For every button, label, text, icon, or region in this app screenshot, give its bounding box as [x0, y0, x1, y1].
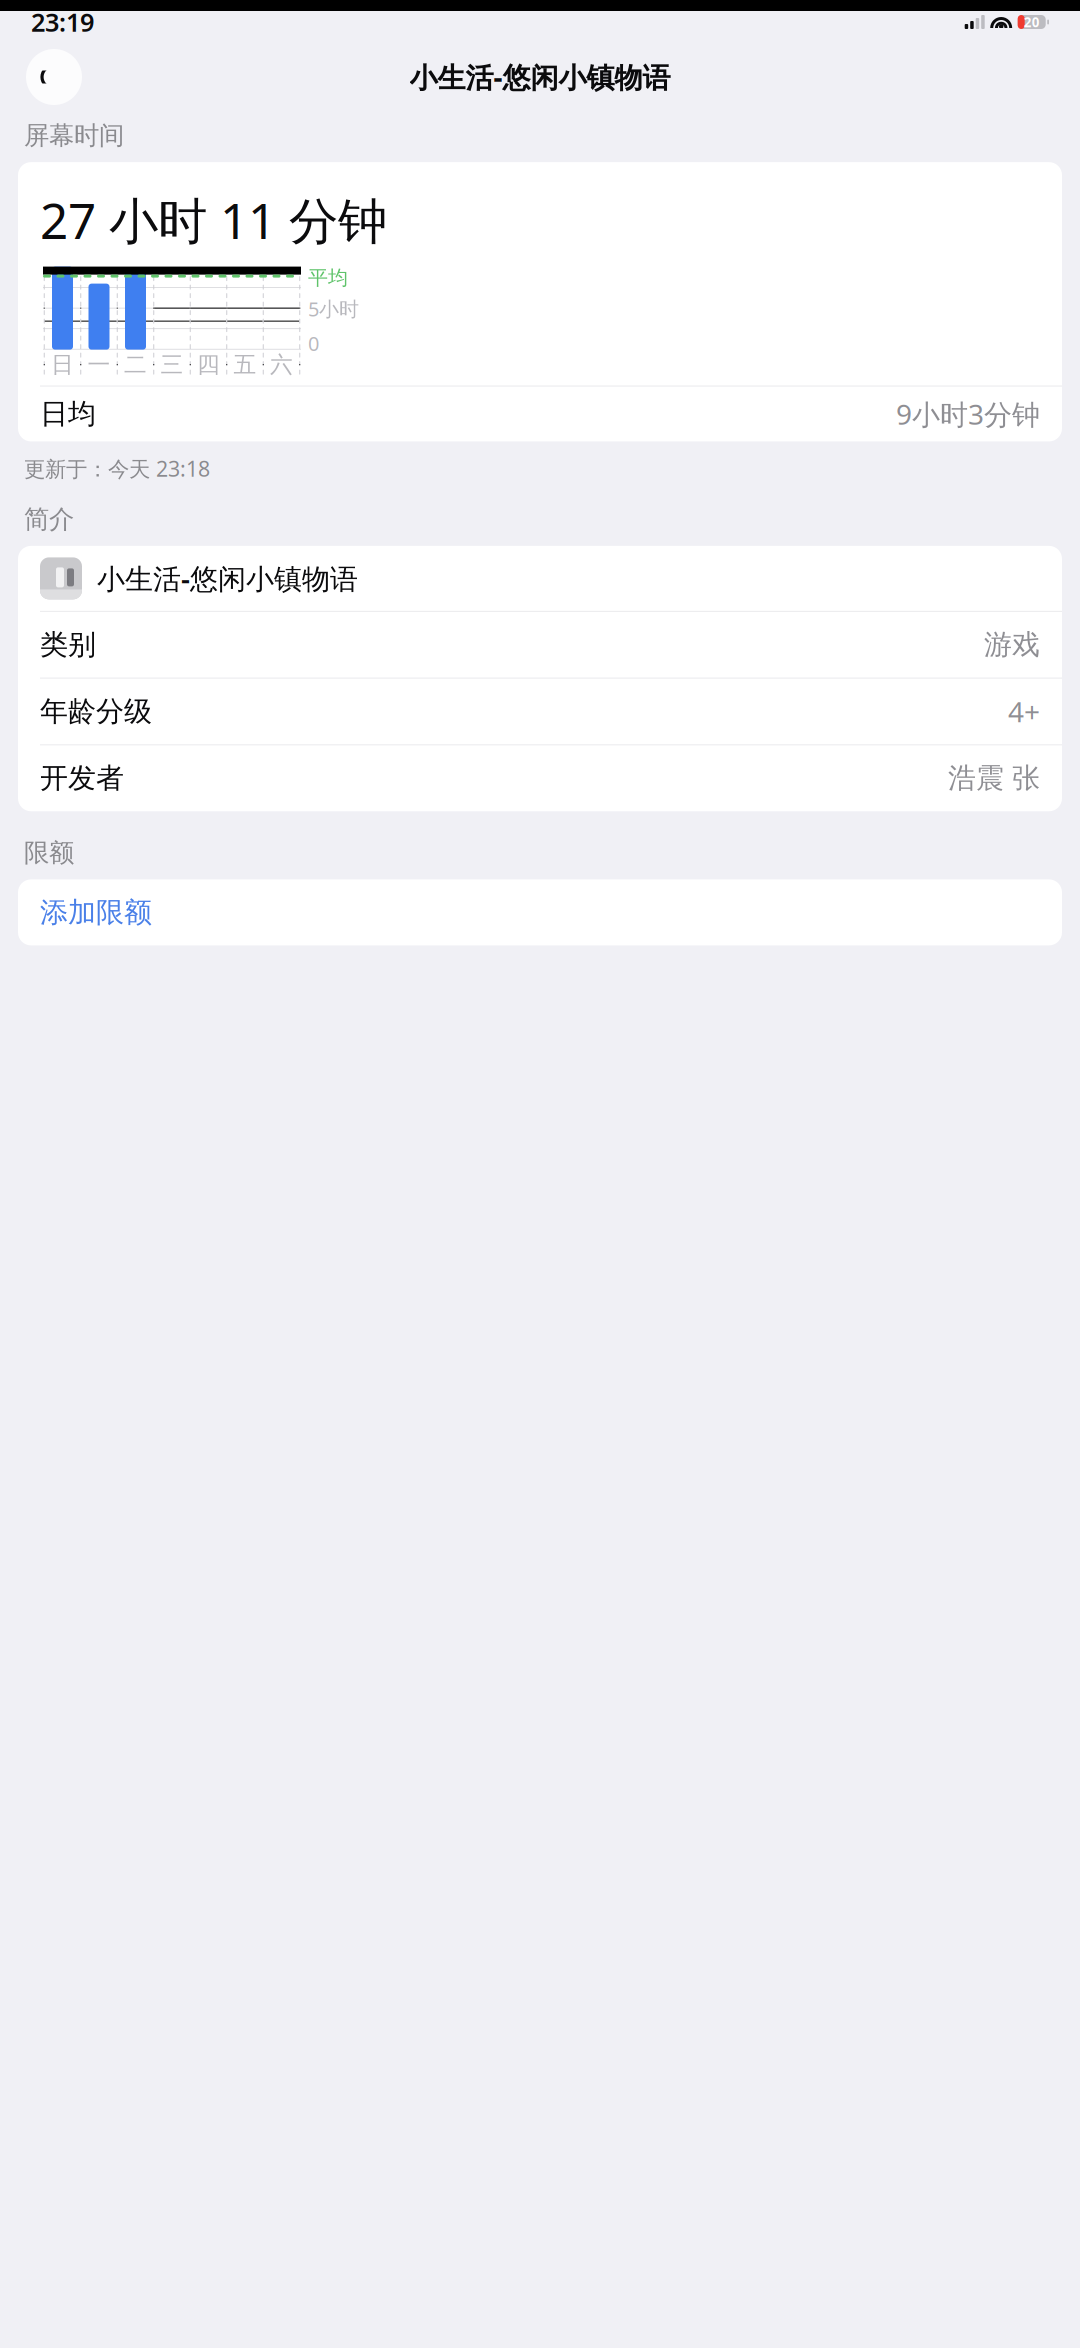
staticText: 浩震 张	[948, 761, 1040, 795]
staticText: 添加限额	[40, 895, 152, 930]
staticText: 更新于：今天 23:18	[24, 454, 210, 483]
staticText: 三	[160, 351, 183, 378]
staticText: 一	[87, 351, 110, 378]
staticText: 0	[308, 330, 319, 357]
staticText: 日均	[40, 397, 96, 431]
staticText: 4+	[1008, 693, 1040, 730]
staticText: 23:19	[31, 5, 94, 39]
staticText: 20	[1024, 13, 1040, 31]
staticText: 六	[270, 351, 293, 378]
staticText: 四	[197, 351, 220, 378]
button[interactable]: 返回	[26, 49, 82, 105]
staticText: 27 小时 11 分钟	[40, 187, 387, 253]
staticText: 年龄分级	[40, 694, 152, 729]
staticText: 5小时	[308, 295, 359, 322]
staticText: 屏幕时间	[24, 120, 124, 151]
staticText: 9小时3分钟	[896, 395, 1040, 432]
staticText: 日	[51, 351, 74, 378]
button[interactable]: 添加限额	[18, 879, 1062, 945]
staticText: 五	[233, 351, 256, 378]
staticText: 平均	[308, 266, 348, 290]
staticText: 二	[124, 351, 147, 378]
staticText: 限额	[24, 837, 74, 868]
staticText: 类别	[40, 627, 96, 662]
staticText: 小生活-悠闲小镇物语	[409, 58, 670, 96]
button[interactable]: 类别	[18, 612, 1062, 678]
staticText: 开发者	[40, 761, 124, 795]
staticText: 游戏	[984, 627, 1040, 662]
staticText: 小生活-悠闲小镇物语	[97, 560, 358, 597]
button[interactable]: 年龄分级	[18, 678, 1062, 744]
staticText: 简介	[24, 504, 74, 535]
button[interactable]: 开发者	[18, 745, 1062, 811]
